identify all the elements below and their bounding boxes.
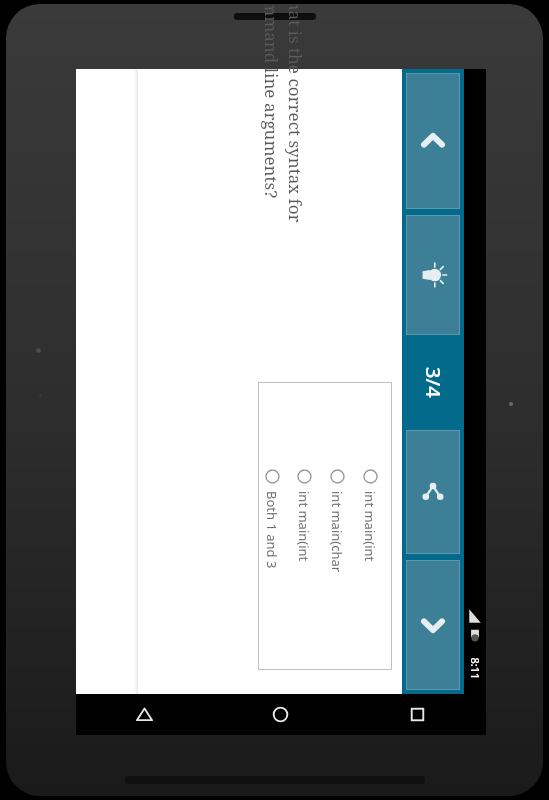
button[interactable]: Next question [406, 560, 460, 690]
button[interactable]: Both 1 and 3 [258, 469, 287, 593]
button[interactable]: int main(int argc,char **argv) [289, 469, 320, 593]
staticText: 8:11 [467, 657, 482, 679]
staticText: Both 1 and 3 [263, 491, 281, 569]
button[interactable]: Hint [406, 215, 460, 335]
button[interactable]: int main(int argc, char *argv[] [355, 469, 386, 593]
button[interactable]: Share [406, 430, 460, 554]
staticText: int main(char *argc,int argv) [328, 491, 346, 593]
button[interactable]: Previous question [406, 73, 460, 209]
button[interactable]: Home [212, 694, 349, 735]
button[interactable]: int main(char *argc,int argv) [322, 469, 353, 593]
staticText: int main(int argc,char **argv) [295, 491, 313, 593]
staticText: 3/4 [420, 367, 447, 398]
button[interactable]: Recent apps [349, 694, 486, 735]
staticText: int main(int argc, char *argv[] [361, 491, 379, 593]
staticText: What is the correct syntax for command l… [260, 4, 307, 244]
button[interactable]: Back [76, 694, 212, 735]
